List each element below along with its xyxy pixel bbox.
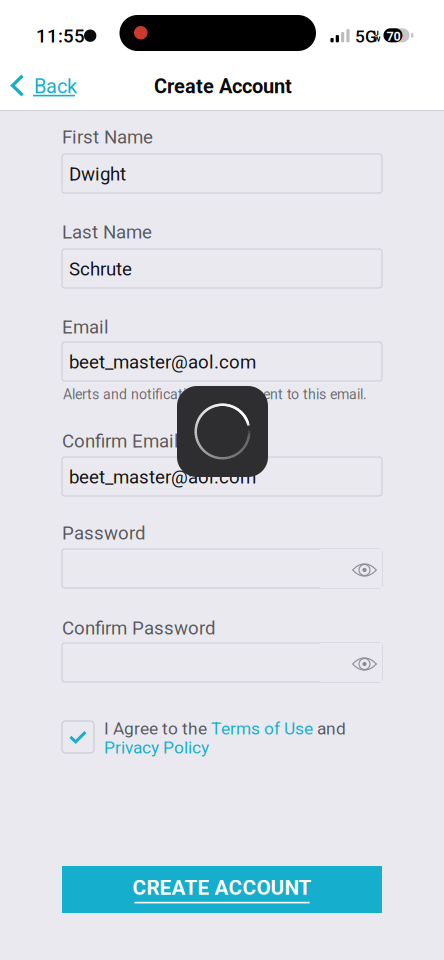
staticText: Dwight xyxy=(69,163,126,185)
staticText: Email xyxy=(62,316,109,338)
button[interactable]: Show Password xyxy=(320,549,382,588)
staticText: beet_master@aol.com xyxy=(69,351,256,373)
staticText: First Name xyxy=(62,126,153,148)
staticText: Confirm Password xyxy=(62,617,216,639)
staticText: Confirm Email xyxy=(62,430,179,452)
staticText: Password xyxy=(62,522,146,544)
staticText: Privacy Policy xyxy=(104,737,209,758)
staticText: Terms of Use xyxy=(211,718,313,739)
staticText: 5G xyxy=(355,26,377,47)
button[interactable]: Show Confirm Password xyxy=(320,643,382,682)
staticText: CREATE ACCOUNT xyxy=(132,876,311,900)
staticText: beet_master@aol.com xyxy=(69,466,256,488)
staticText: and xyxy=(313,718,346,739)
staticText: 70 xyxy=(386,29,400,44)
staticText: Back xyxy=(34,75,77,98)
button[interactable]: Back xyxy=(8,64,108,108)
staticText: I Agree to the xyxy=(104,718,211,739)
button[interactable]: CREATE ACCOUNT xyxy=(62,866,382,913)
button[interactable]: I Agree to the xyxy=(62,716,382,762)
staticText: Schrute xyxy=(69,258,132,280)
staticText: W xyxy=(373,34,380,43)
staticText: U xyxy=(373,28,378,38)
staticText: 11:55 xyxy=(36,25,85,47)
staticText: Last Name xyxy=(62,221,152,243)
staticText: Alerts and notifications will be sent to… xyxy=(63,386,367,403)
staticText: Create Account xyxy=(154,75,292,98)
